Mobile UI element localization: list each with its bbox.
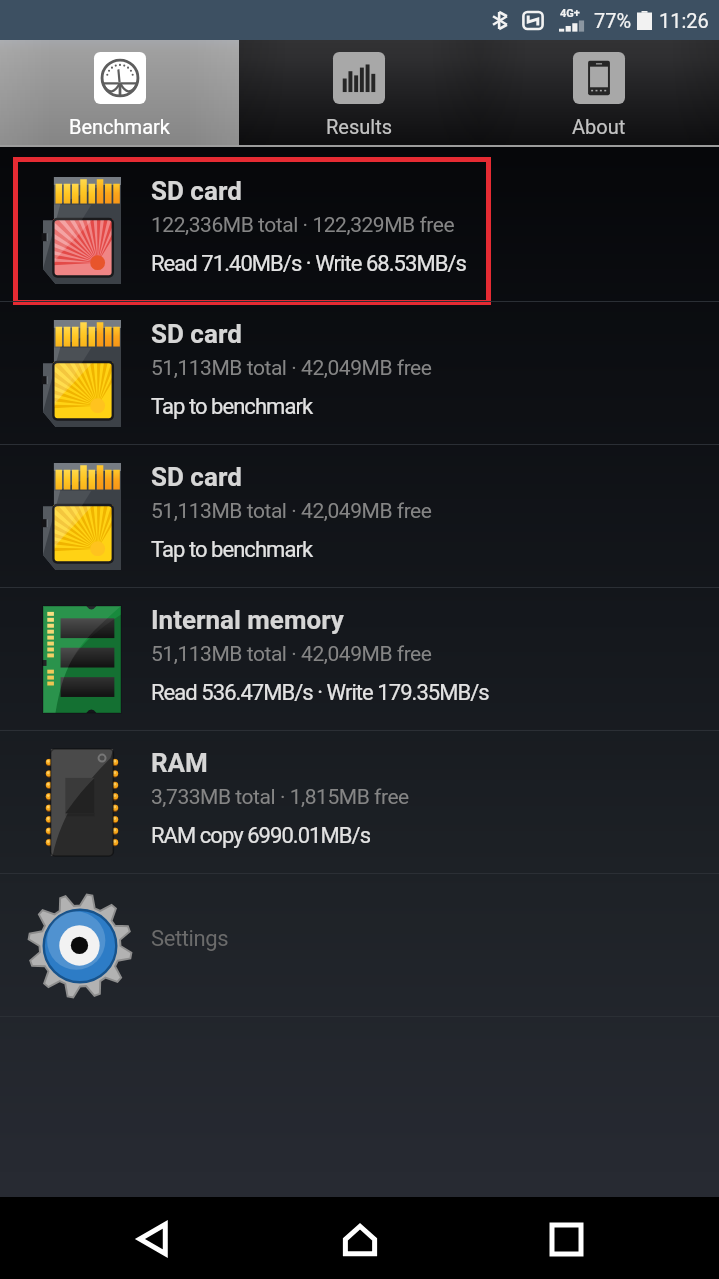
button[interactable]: Benchmark [0, 40, 239, 145]
staticText: 11:26 [659, 9, 709, 32]
button[interactable]: SD card [0, 159, 719, 302]
staticText: RAM copy 6990.01MB/s [151, 823, 371, 849]
button[interactable]: RAM [0, 731, 719, 874]
button[interactable]: Internal memory [0, 588, 719, 731]
staticText: Read 71.40MB/s · Write 68.53MB/s [151, 251, 466, 277]
button[interactable]: Back [113, 1197, 193, 1279]
staticText: SD card [151, 176, 242, 206]
button[interactable]: Results [239, 40, 479, 145]
staticText: 4G+ [560, 7, 580, 20]
staticText: 51,113MB total · 42,049MB free [151, 642, 432, 667]
staticText: Tap to benchmark [151, 537, 313, 563]
button[interactable]: Home [320, 1197, 400, 1279]
staticText: 3,733MB total · 1,815MB free [151, 785, 409, 810]
staticText: SD card [151, 319, 242, 349]
staticText: 51,113MB total · 42,049MB free [151, 356, 432, 381]
staticText: Benchmark [69, 115, 170, 138]
staticText: About [572, 115, 626, 138]
staticText: 122,336MB total · 122,329MB free [151, 213, 455, 238]
staticText: Tap to benchmark [151, 394, 313, 420]
staticText: Internal memory [151, 605, 344, 635]
staticText: RAM [151, 748, 208, 778]
staticText: 51,113MB total · 42,049MB free [151, 499, 432, 524]
button[interactable]: Recents [526, 1197, 606, 1279]
button[interactable]: SD card [0, 445, 719, 588]
staticText: Settings [151, 926, 229, 952]
button[interactable]: Settings [0, 874, 719, 1017]
staticText: Results [326, 115, 393, 138]
button[interactable]: About [479, 40, 719, 145]
staticText: Read 536.47MB/s · Write 179.35MB/s [151, 680, 489, 706]
staticText: SD card [151, 462, 242, 492]
button[interactable]: SD card [0, 302, 719, 445]
staticText: 77% [594, 9, 632, 32]
